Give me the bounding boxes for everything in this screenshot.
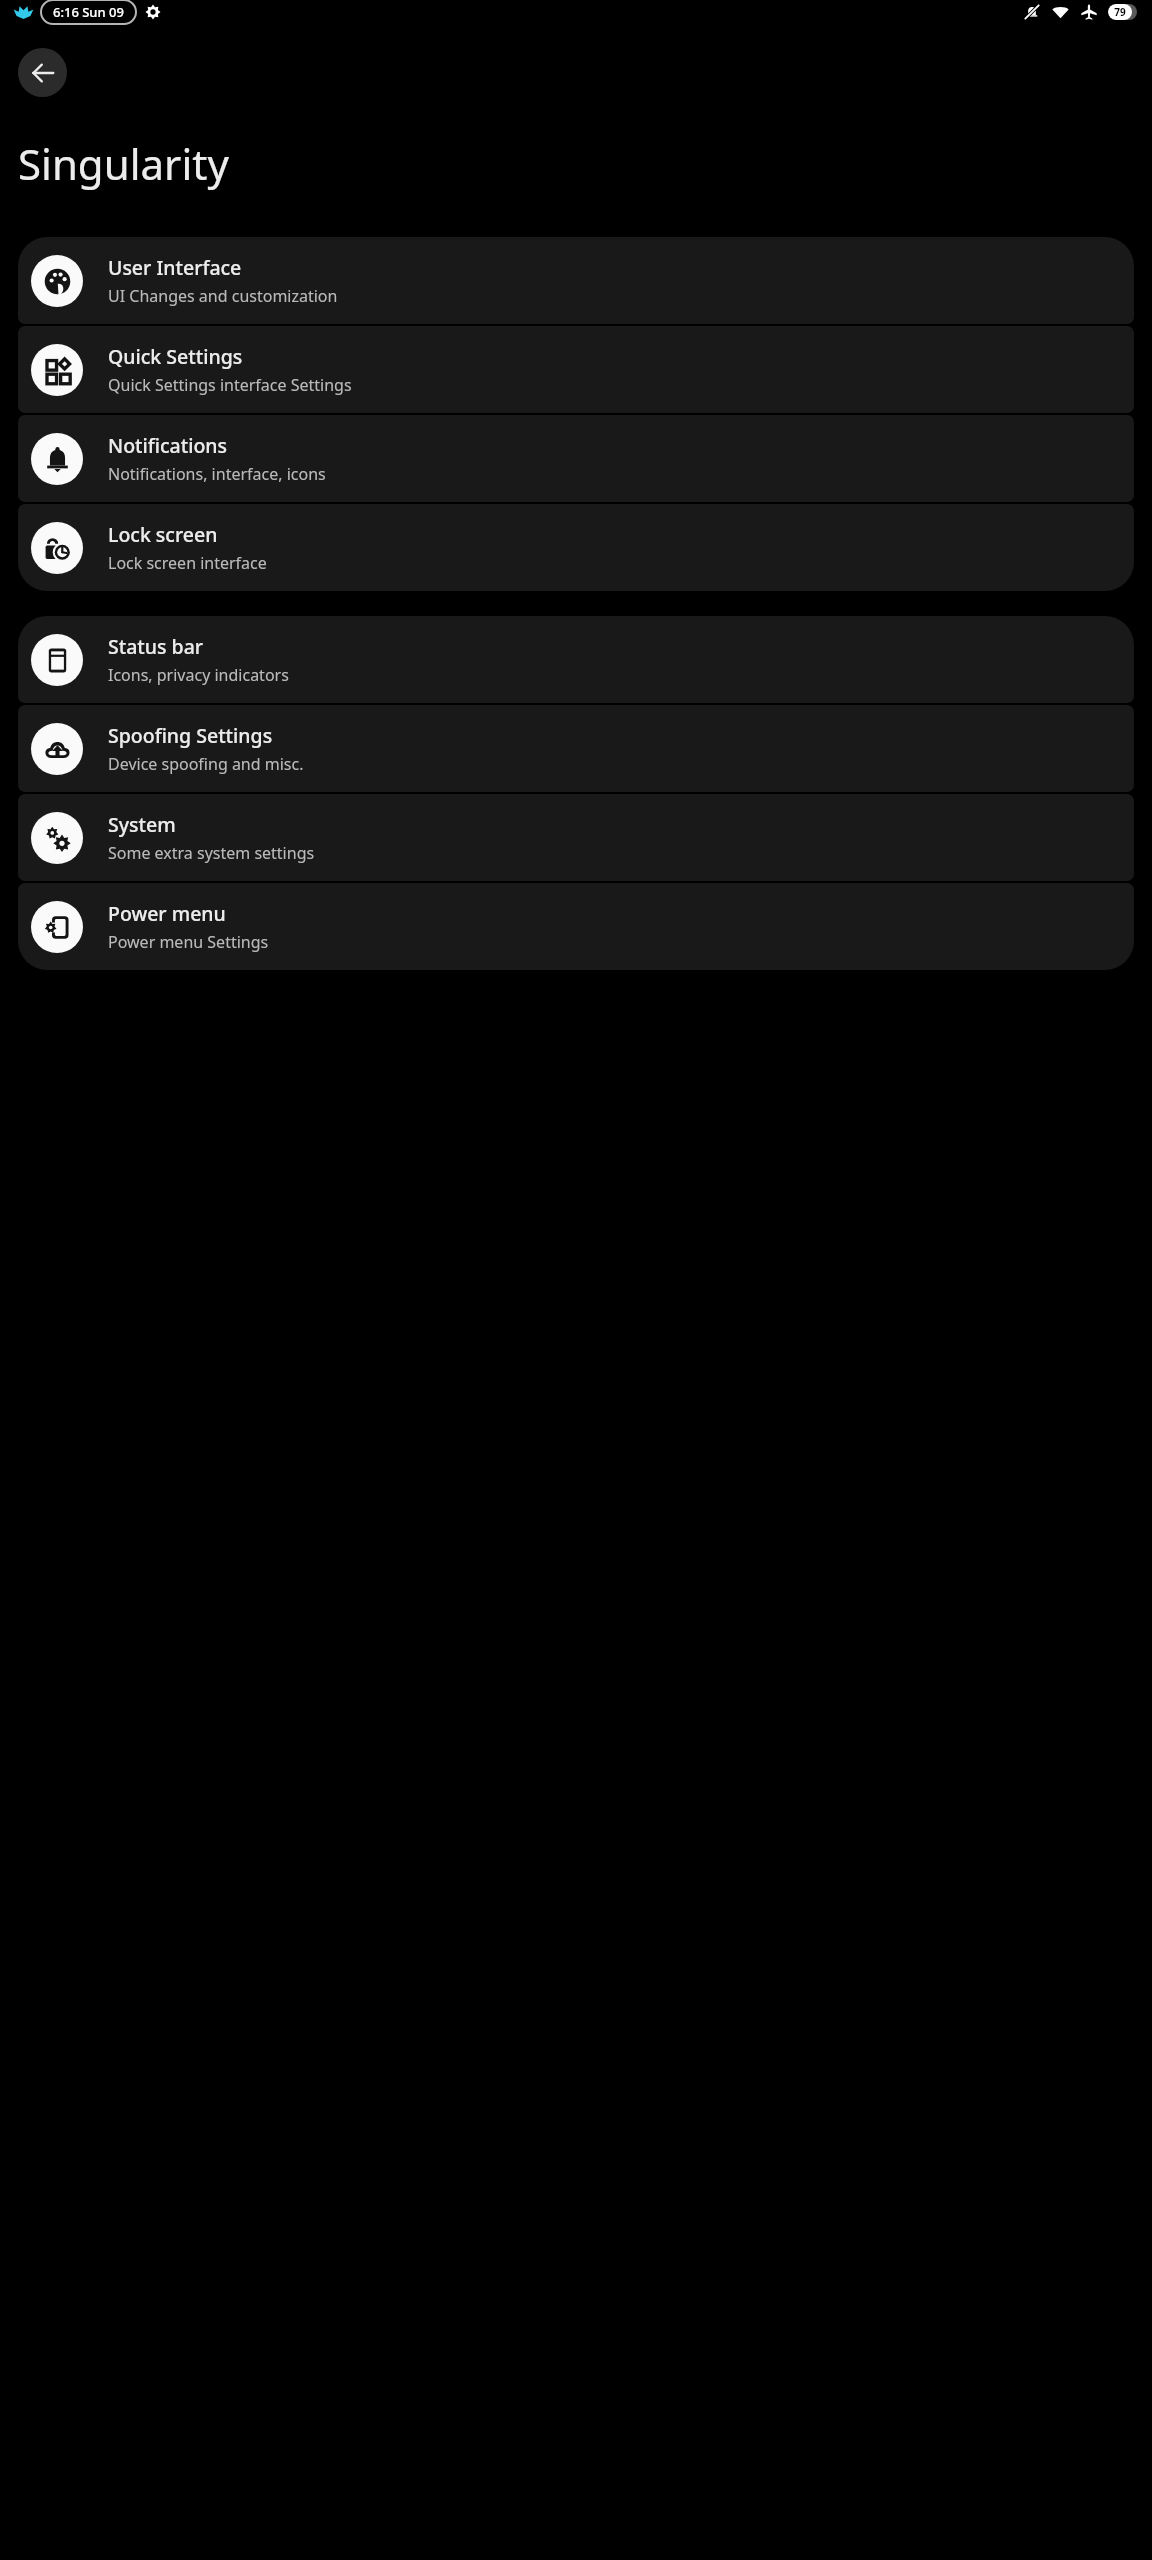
staticText: Quick Settings interface Settings xyxy=(108,374,352,396)
staticText: Power menu xyxy=(108,900,226,927)
button[interactable]: User Interface xyxy=(18,237,1134,324)
staticText: Quick Settings xyxy=(108,343,243,370)
button[interactable]: Settings xyxy=(145,4,161,20)
staticText: Notifications, interface, icons xyxy=(108,463,326,485)
button[interactable]: Quick Settings xyxy=(18,326,1134,413)
staticText: User Interface xyxy=(108,254,242,281)
button[interactable]: Lock screen xyxy=(18,504,1134,591)
staticText: Status bar xyxy=(108,633,204,660)
button[interactable]: Back xyxy=(18,48,67,97)
button[interactable]: System xyxy=(18,794,1134,881)
staticText: 6:16 Sun 09 xyxy=(53,3,124,21)
staticText: System xyxy=(108,811,176,838)
button[interactable]: Notifications xyxy=(18,415,1134,502)
staticText: Device spoofing and misc. xyxy=(108,753,304,775)
staticText: Spoofing Settings xyxy=(108,722,273,749)
staticText: Some extra system settings xyxy=(108,842,315,864)
staticText: Singularity xyxy=(18,135,229,192)
staticText: UI Changes and customization xyxy=(108,285,338,307)
button[interactable]: Spoofing Settings xyxy=(18,705,1134,792)
staticText: Lock screen xyxy=(108,521,218,548)
button[interactable]: Status bar xyxy=(18,616,1134,703)
staticText: Icons, privacy indicators xyxy=(108,664,289,686)
staticText: Power menu Settings xyxy=(108,931,269,953)
staticText: Notifications xyxy=(108,432,228,459)
staticText: Lock screen interface xyxy=(108,552,267,574)
staticText: 79 xyxy=(1114,5,1126,19)
button[interactable]: Power menu xyxy=(18,883,1134,970)
